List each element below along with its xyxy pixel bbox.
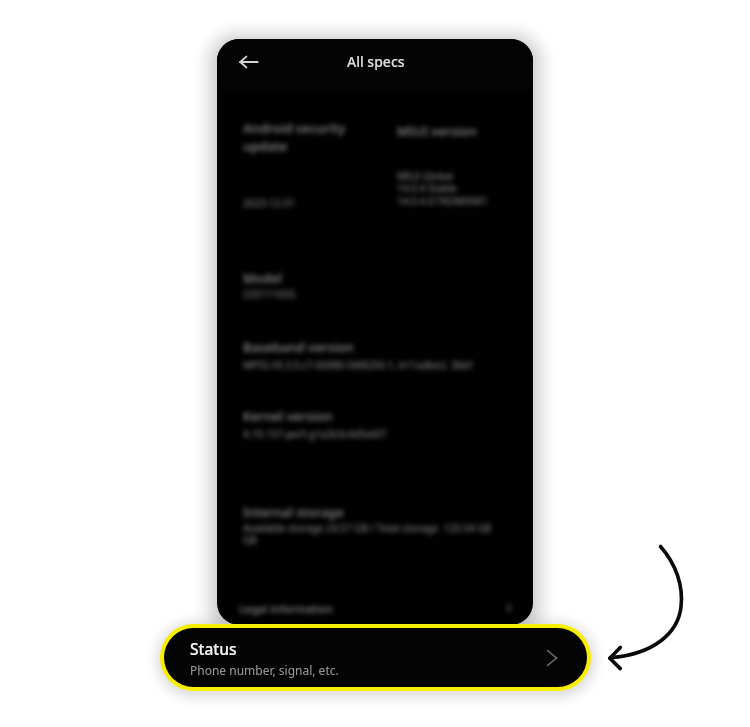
- staticText: MIUI version: [397, 122, 477, 140]
- staticText: Baseband version: [243, 338, 354, 356]
- staticText: Model: [243, 269, 282, 287]
- staticText: 4.19.157-perf-g1a2b3c4d5e6f7: [243, 427, 387, 441]
- staticText: MPSS.HI.3.0.c7-00080-SM8250.1, b11adbe2,…: [243, 358, 473, 372]
- other: Open legal information: [503, 602, 515, 614]
- staticText: Legal information: [239, 601, 333, 616]
- staticText: Status: [190, 638, 237, 659]
- staticText: Internal storage: [243, 503, 344, 521]
- button[interactable]: Back: [232, 45, 266, 79]
- staticText: update: [243, 137, 288, 155]
- button[interactable]: Legal information: [217, 588, 533, 625]
- staticText: Android security: [243, 119, 346, 137]
- staticText: 2023-12-01: [243, 196, 296, 210]
- staticText: MIUI Global 14.0.4 Stable 14.0.4.0.TKDMI…: [397, 169, 488, 208]
- other: Open Status: [542, 648, 562, 668]
- button[interactable]: Status: [164, 628, 587, 687]
- staticText: Phone number, signal, etc.: [190, 662, 339, 678]
- staticText: Available storage 24.57 GB / Total stora…: [243, 521, 492, 547]
- staticText: All specs: [347, 52, 405, 71]
- staticText: Kernel version: [243, 407, 333, 425]
- staticText: 2201116SG: [243, 287, 296, 301]
